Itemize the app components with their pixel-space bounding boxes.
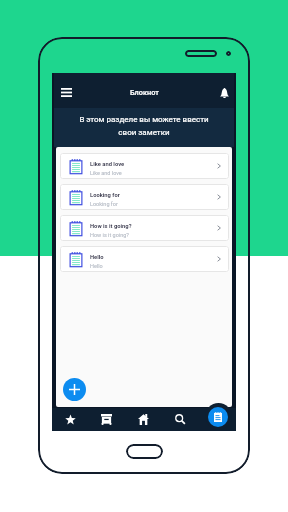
staticText: How is it going?	[90, 223, 132, 230]
staticText: Like and love	[90, 170, 122, 176]
staticText: Блокнот	[130, 88, 159, 97]
button[interactable]: Add note	[63, 378, 86, 401]
button[interactable]: Notifications	[212, 81, 236, 105]
staticText: Looking for	[90, 201, 118, 207]
button[interactable]: How is it going?	[60, 215, 229, 241]
button[interactable]: Looking for	[60, 184, 229, 210]
staticText: Hello	[90, 263, 103, 269]
staticText: Like and love	[90, 161, 125, 168]
button[interactable]: Favorites	[52, 408, 88, 431]
button[interactable]: Archive	[88, 408, 125, 431]
button[interactable]: Hello	[60, 246, 229, 272]
button[interactable]: Search	[162, 408, 199, 431]
button[interactable]: Menu	[54, 80, 78, 104]
button[interactable]: Home	[125, 408, 162, 431]
staticText: Looking for	[90, 192, 120, 199]
staticText: How is it going?	[90, 232, 129, 238]
button[interactable]: Like and love	[60, 153, 229, 179]
button[interactable]: Notes	[208, 407, 228, 427]
staticText: Hello	[90, 254, 104, 261]
staticText: В этом разделе вы можете ввести свои зам…	[70, 115, 218, 137]
